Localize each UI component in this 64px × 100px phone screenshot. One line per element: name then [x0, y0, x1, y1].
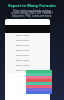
button[interactable]: Export Video [5, 33, 50, 38]
button[interactable]: Export Video [5, 43, 50, 48]
staticText: Export in Many Formats [0, 3, 64, 8]
button[interactable]: Export Video [5, 58, 50, 63]
staticText: Export Video [16, 39, 30, 42]
button[interactable]: Export Video [5, 53, 50, 58]
button[interactable]: Export Video [5, 63, 50, 68]
button[interactable]: Export Video [5, 68, 50, 73]
staticText: Export Video [16, 44, 30, 47]
staticText: Export Video [16, 59, 30, 62]
staticText: Share with your friends or keep in your … [0, 9, 64, 18]
staticText: Export Video [16, 69, 30, 72]
button[interactable]: Export Video [5, 38, 50, 43]
staticText: Export Video [16, 34, 30, 37]
staticText: Export Video [16, 54, 30, 57]
staticText: Export Video [16, 64, 30, 67]
staticText: Export Video [16, 49, 30, 52]
button[interactable]: Export Video [5, 48, 50, 53]
